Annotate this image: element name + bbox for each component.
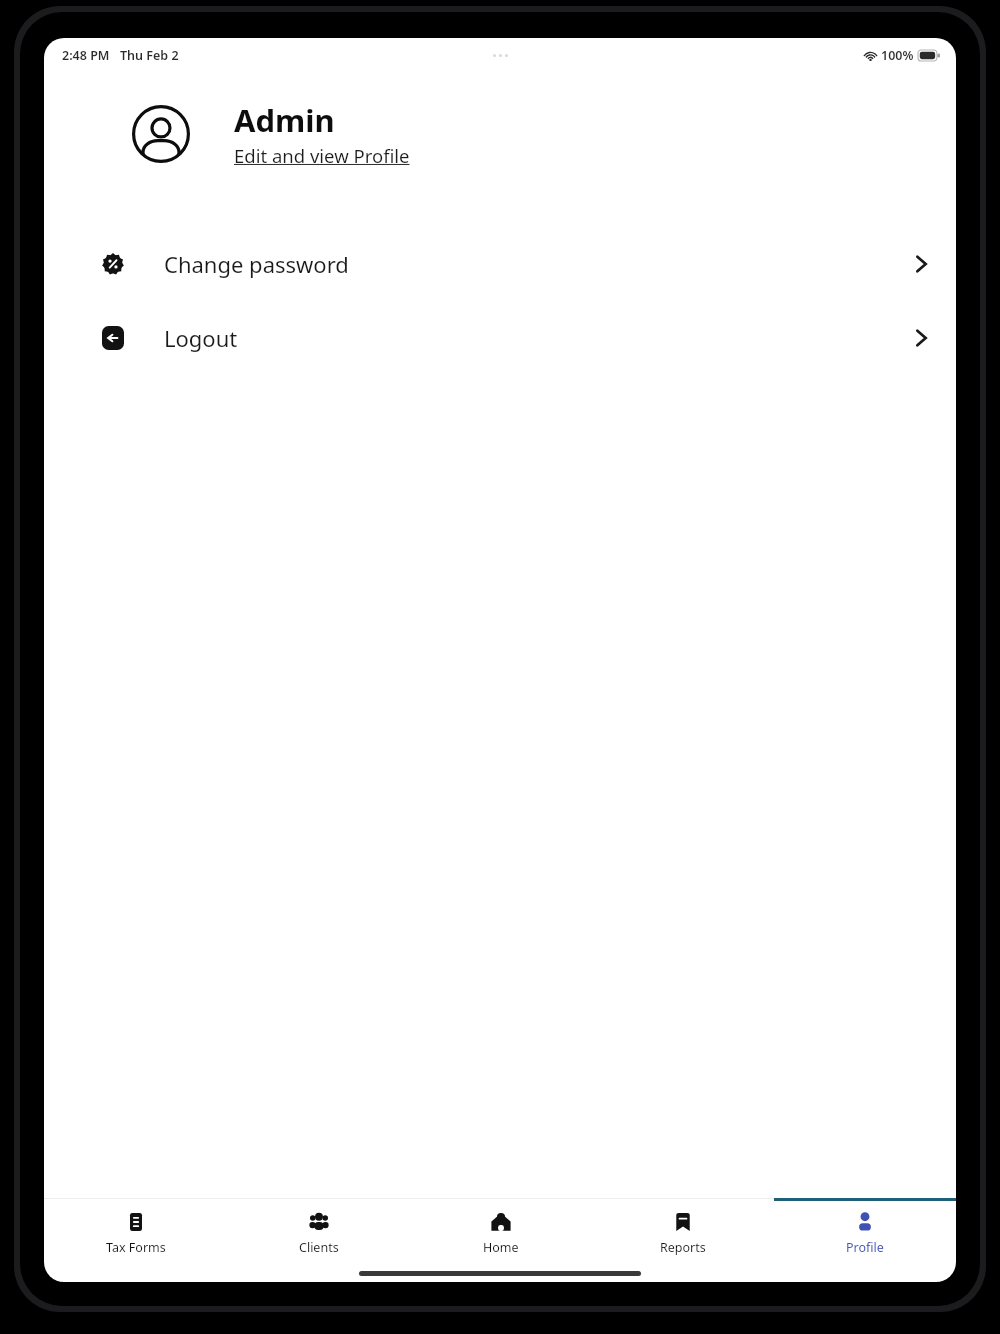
staticText: Thu Feb 2 xyxy=(120,47,179,64)
staticText: Clients xyxy=(299,1239,339,1256)
other: Logout xyxy=(908,325,934,351)
other: Change password xyxy=(908,251,934,277)
staticText: Edit and view Profile xyxy=(234,143,410,168)
staticText: Logout xyxy=(164,323,238,353)
staticText: Change password xyxy=(164,249,349,279)
button[interactable]: Logout xyxy=(44,301,956,375)
button[interactable]: Clients xyxy=(227,1202,410,1264)
button[interactable]: Profile xyxy=(774,1202,956,1264)
staticText: Home xyxy=(483,1239,519,1256)
button[interactable]: Reports xyxy=(592,1202,774,1264)
button[interactable]: Profile avatar xyxy=(44,99,956,168)
other: Profile avatar xyxy=(132,105,190,163)
button[interactable]: Home xyxy=(410,1202,592,1264)
staticText: Profile xyxy=(846,1239,884,1256)
button[interactable]: Change password xyxy=(44,227,956,301)
staticText: 2:48 PM xyxy=(62,47,110,64)
staticText: 100% xyxy=(881,47,914,64)
staticText: Tax Forms xyxy=(106,1239,166,1256)
staticText: Admin xyxy=(234,99,335,141)
button[interactable]: Tax Forms xyxy=(44,1202,227,1264)
staticText: Reports xyxy=(660,1239,706,1256)
